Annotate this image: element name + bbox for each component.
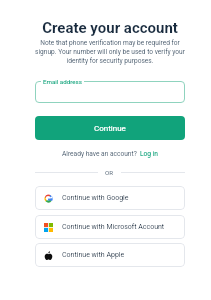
staticText: Email address: [43, 78, 82, 85]
button[interactable]: Continue with Microsoft Account: [35, 215, 185, 239]
button[interactable]: Continue: [35, 116, 185, 140]
button[interactable]: Continue with Google: [35, 186, 185, 210]
staticText: OR: [105, 169, 114, 176]
staticText: Log in: [140, 150, 158, 158]
staticText: Note that phone verification may be requ…: [35, 39, 185, 65]
staticText: Continue with Apple: [62, 251, 125, 259]
button[interactable]: Continue with Apple: [35, 243, 185, 267]
staticText: Continue with Microsoft Account: [62, 223, 165, 231]
button[interactable]: Email address: [35, 81, 185, 103]
button[interactable]: Log in: [137, 150, 158, 158]
staticText: Continue: [94, 124, 126, 133]
staticText: Continue with Google: [62, 194, 129, 202]
staticText: Already have an account?: [62, 150, 137, 158]
staticText: Create your account: [35, 19, 185, 37]
